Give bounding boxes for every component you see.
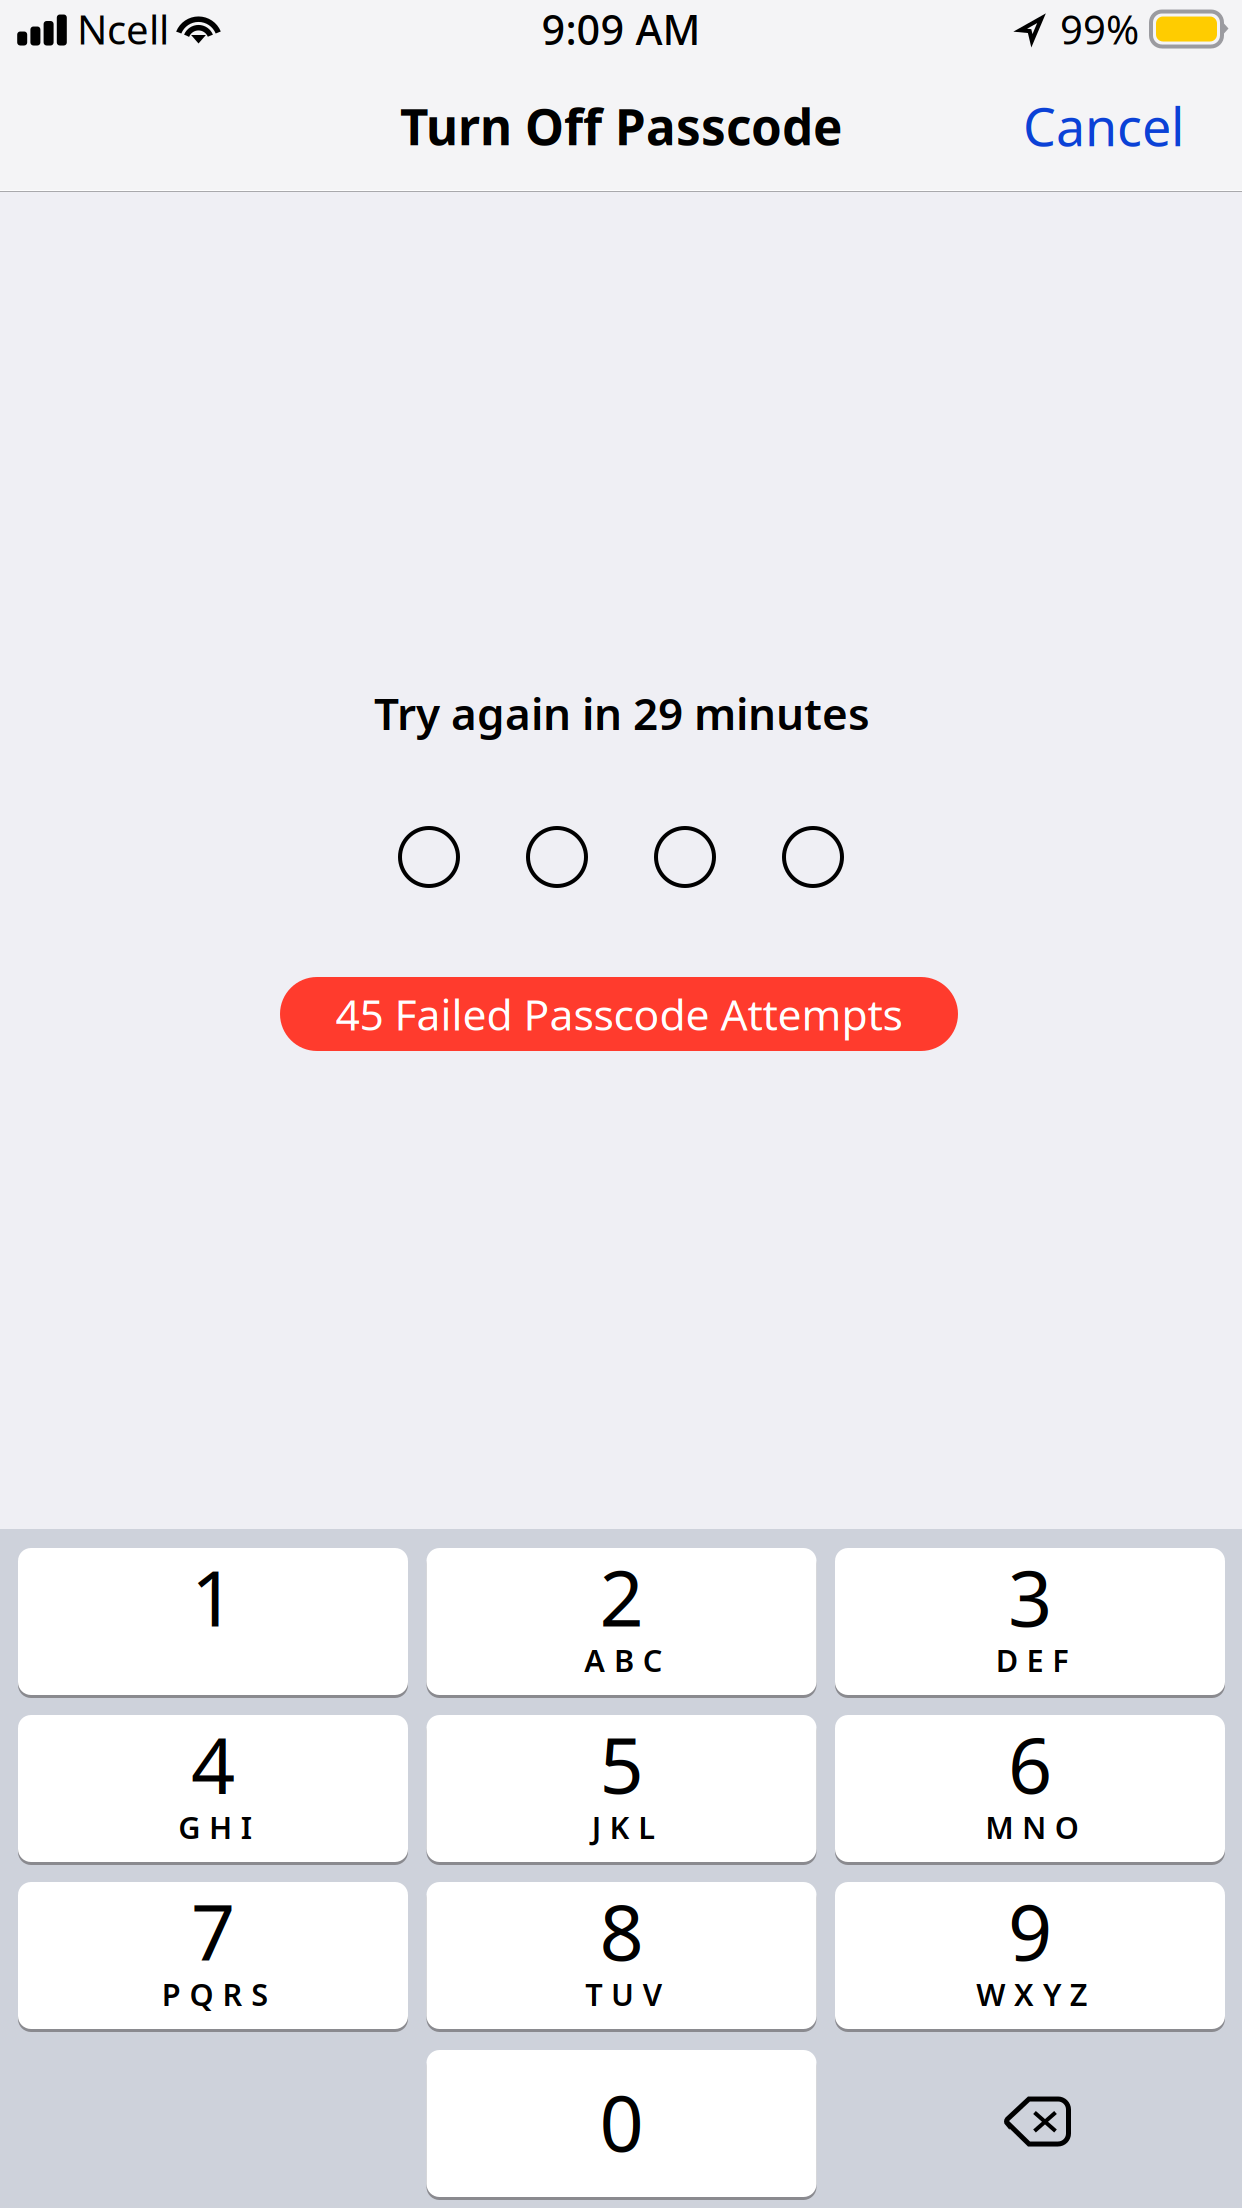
staticText: 7: [191, 1879, 235, 1982]
staticText: JKL: [592, 1807, 655, 1847]
button[interactable]: Cancel: [999, 69, 1208, 183]
staticText: 45 Failed Passcode Attempts: [335, 986, 902, 1042]
button[interactable]: 3: [835, 1546, 1225, 1697]
staticText: 4: [191, 1712, 235, 1815]
staticText: 2: [599, 1545, 643, 1648]
staticText: WXYZ: [976, 1974, 1088, 2014]
staticText: 0: [599, 2070, 643, 2173]
staticText: DEF: [996, 1640, 1068, 1680]
staticText: Try again in 29 minutes: [374, 684, 870, 742]
button[interactable]: Delete: [842, 2048, 1232, 2195]
staticText: TUV: [585, 1974, 662, 2014]
button[interactable]: 5: [426, 1713, 816, 1864]
staticText: 6: [1008, 1712, 1052, 1815]
staticText: 5: [599, 1712, 643, 1815]
button[interactable]: 1: [18, 1546, 408, 1697]
button[interactable]: 4: [18, 1713, 408, 1864]
staticText: Ncell: [77, 2, 169, 55]
staticText: 3: [1008, 1545, 1052, 1648]
staticText: ABC: [584, 1640, 663, 1680]
button[interactable]: 0: [426, 2048, 816, 2199]
staticText: 9:09 AM: [541, 2, 700, 56]
staticText: 9: [1008, 1879, 1052, 1982]
button[interactable]: 2: [426, 1546, 816, 1697]
staticText: Cancel: [1023, 91, 1184, 161]
staticText: GHI: [178, 1807, 252, 1847]
button[interactable]: 7: [18, 1880, 408, 2031]
staticText: MNO: [985, 1807, 1079, 1847]
staticText: PQRS: [162, 1974, 268, 2014]
staticText: 99%: [1060, 2, 1139, 55]
staticText: 8: [599, 1879, 643, 1982]
staticText: 1: [191, 1545, 235, 1648]
staticText: Turn Off Passcode: [400, 93, 842, 159]
button[interactable]: 9: [835, 1880, 1225, 2031]
button[interactable]: 8: [426, 1880, 816, 2031]
button[interactable]: 6: [835, 1713, 1225, 1864]
